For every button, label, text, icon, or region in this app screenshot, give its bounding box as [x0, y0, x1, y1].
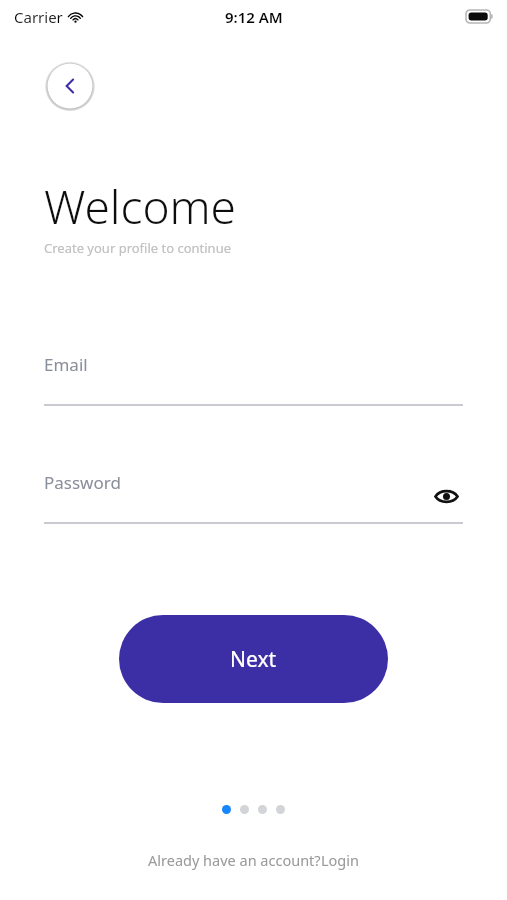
button[interactable]: Already have an account? [148, 850, 359, 870]
button[interactable]: Show password [429, 479, 463, 513]
staticText: 9:12 AM [225, 7, 283, 27]
staticText: Carrier [14, 7, 63, 27]
button[interactable] [276, 805, 285, 814]
staticText: Next [230, 645, 277, 674]
button[interactable]: Back [45, 61, 95, 111]
staticText: Create your profile to continue [44, 239, 232, 257]
button[interactable]: Next [119, 615, 388, 703]
button[interactable] [222, 805, 231, 814]
button[interactable] [240, 805, 249, 814]
button[interactable] [258, 805, 267, 814]
staticText: Password [44, 471, 121, 494]
staticText: Email [44, 353, 88, 376]
staticText: Already have an account? [148, 850, 321, 870]
staticText: Login [321, 850, 359, 870]
button[interactable]: Email [44, 353, 463, 406]
staticText: Welcome [44, 175, 237, 238]
button[interactable]: Password [44, 471, 463, 524]
